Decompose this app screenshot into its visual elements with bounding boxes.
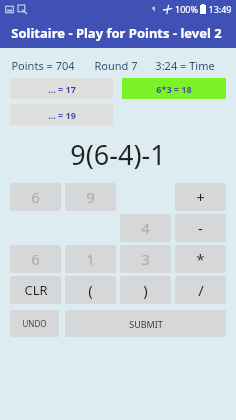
staticText: 4 (141, 218, 150, 238)
button[interactable]: 1 (65, 245, 116, 273)
staticText: - (198, 218, 203, 238)
button[interactable]: 4 (120, 214, 171, 242)
staticText: / (198, 280, 204, 300)
button[interactable]: * (175, 245, 226, 273)
staticText: 6 (31, 249, 40, 269)
staticText: ( (88, 280, 93, 300)
button[interactable]: CLR (10, 276, 61, 304)
button[interactable]: / (175, 276, 226, 304)
button[interactable]: 9 (65, 183, 116, 211)
button[interactable]: ... = 19 (10, 104, 113, 125)
staticText: ) (143, 280, 148, 300)
staticText: Points = 704 (11, 58, 75, 72)
staticText: CLR (24, 281, 48, 299)
button[interactable]: ( (65, 276, 116, 304)
button[interactable]: 6*3 = 18 (122, 78, 226, 99)
staticText: * (196, 249, 205, 269)
staticText: 13:49 (208, 3, 232, 15)
button[interactable]: + (175, 183, 226, 211)
staticText: ... = 17 (48, 83, 76, 95)
staticText: + (196, 187, 205, 207)
button[interactable]: Solitaire - Play for Points - level 2 (0, 18, 236, 48)
button[interactable]: - (175, 214, 226, 242)
staticText: 1 (86, 249, 95, 269)
staticText: 3 (141, 249, 150, 269)
staticText: 6 (31, 187, 40, 207)
button[interactable]: 6 (10, 183, 61, 211)
button[interactable]: ... = 17 (10, 78, 113, 99)
staticText: Round 7 (94, 58, 138, 72)
staticText: 3:24 = Time (155, 58, 215, 72)
staticText: 9 (86, 187, 95, 207)
staticText: 100% (175, 3, 198, 15)
staticText: SUBMIT (129, 318, 163, 330)
button[interactable]: ) (120, 276, 171, 304)
button[interactable]: SUBMIT (65, 310, 226, 337)
staticText: 9(6-4)-1 (70, 136, 166, 173)
staticText: 6*3 = 18 (156, 83, 192, 95)
staticText: ... = 19 (48, 109, 76, 121)
button[interactable]: UNDO (10, 310, 59, 337)
staticText: Solitaire - Play for Points - level 2 (11, 24, 222, 42)
button[interactable]: 6 (10, 245, 61, 273)
button[interactable]: 3 (120, 245, 171, 273)
staticText: UNDO (22, 318, 47, 329)
